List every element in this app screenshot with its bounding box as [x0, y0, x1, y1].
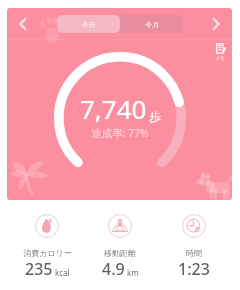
button[interactable]: 今日 [57, 15, 120, 33]
staticText: 7,740 [80, 91, 147, 126]
staticText: 4.9 [102, 258, 125, 280]
staticText: 移動距離 [104, 248, 136, 258]
button[interactable]: 消費カロリー [12, 214, 82, 280]
staticText: 235 [25, 258, 53, 280]
button[interactable]: 移動距離 [85, 214, 155, 280]
staticText: km [127, 267, 139, 278]
button[interactable]: 今月 [120, 15, 183, 33]
staticText: メモ [215, 55, 226, 61]
staticText: 1:23 [178, 258, 210, 280]
staticText: 今月 [145, 20, 159, 29]
button[interactable]: Previous period [9, 10, 37, 38]
button[interactable]: Next period [202, 10, 230, 38]
staticText: 達成率: 77% [91, 126, 149, 140]
button[interactable]: 時間 [159, 214, 229, 280]
button[interactable]: Memo [215, 43, 226, 61]
staticText: 消費カロリー [23, 248, 72, 258]
staticText: kcal [55, 267, 70, 278]
staticText: 歩 [149, 109, 161, 124]
staticText: 今日 [82, 20, 96, 29]
staticText: 時間 [186, 248, 202, 258]
